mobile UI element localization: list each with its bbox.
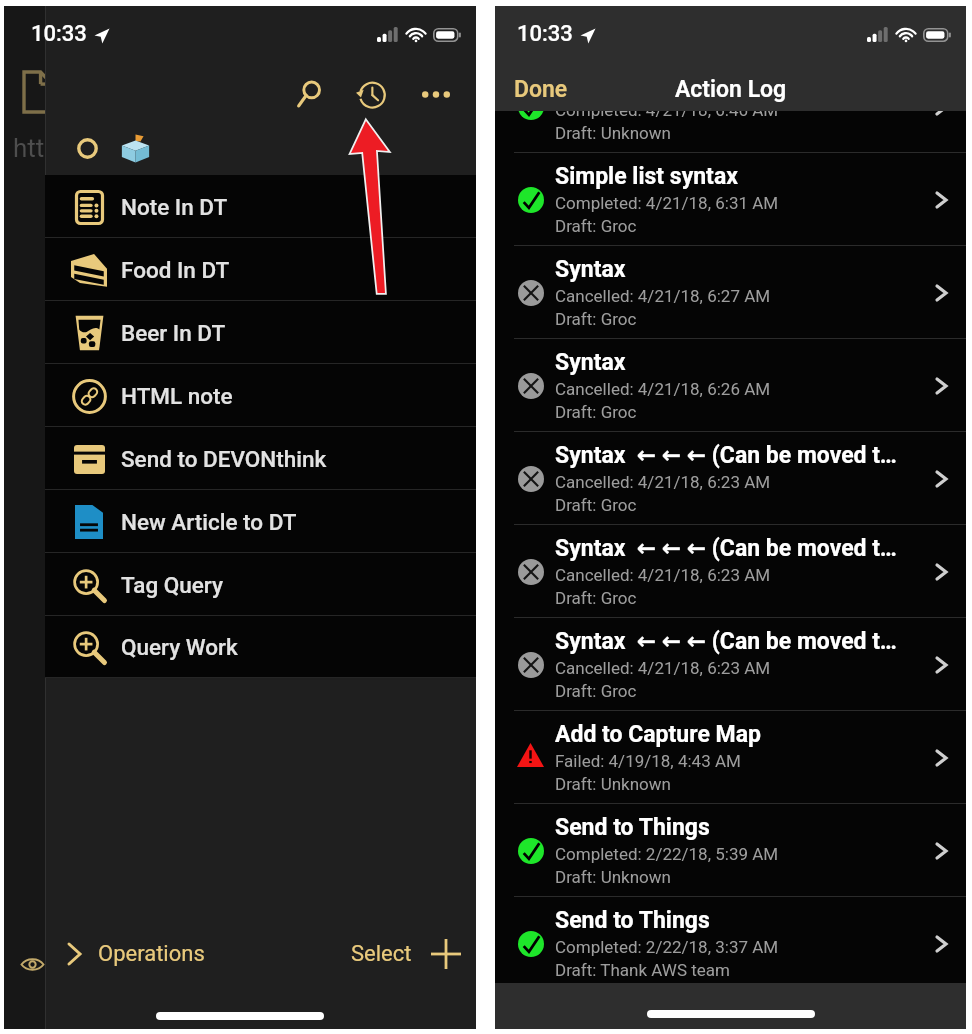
staticText: Send to Things [555,814,710,841]
button[interactable]: Add to Capture Map [495,711,966,804]
staticText: Cancelled: 4/21/18, 6:23 AM [555,565,771,585]
staticText: Draft: Groc [555,309,637,329]
staticText: Syntax ← ← ← (Can be moved to... [555,628,899,655]
staticText: Draft: Thank AWS team [555,960,730,980]
staticText: Note In DT [121,194,228,220]
staticText: Action Log [675,76,787,103]
button[interactable]: Syntax ← ← ← (Can be moved to... [495,525,966,618]
button[interactable]: Action [115,128,155,168]
button[interactable]: Note In DT [45,175,476,238]
staticText: 10:33 [517,21,573,47]
staticText: Syntax ← ← ← (Can be moved to... [555,442,899,469]
button[interactable]: Send to Things [495,804,966,897]
staticText: Food In DT [121,257,230,283]
button[interactable]: Tag Query [45,553,476,616]
button[interactable]: Syntax ← ← ← (Can be moved to... [495,432,966,525]
staticText: Syntax [555,349,626,376]
button[interactable]: History [346,70,394,118]
staticText: Cancelled: 4/21/18, 6:26 AM [555,379,771,399]
staticText: htt [13,133,45,163]
button[interactable]: Beer In DT [45,301,476,364]
staticText: HTML note [121,383,233,409]
button[interactable]: Syntax [495,246,966,339]
staticText: Operations [98,941,205,967]
staticText: Select [351,941,412,967]
staticText: Completed: 4/21/18, 6:31 AM [555,193,779,213]
button[interactable]: Syntax ← ← ← (Can be moved to... [495,618,966,711]
staticText: Send to DEVONthink [121,446,327,472]
staticText: Draft: Unknown [555,774,671,794]
staticText: Simple list syntax [555,163,738,190]
staticText: Draft: Groc [555,681,637,701]
button[interactable]: Record [67,128,107,168]
staticText: Failed: 4/19/18, 4:43 AM [555,751,741,771]
button[interactable]: Send to Things [495,897,966,983]
staticText: Tag Query [121,572,223,598]
staticText: Draft: Groc [555,588,637,608]
staticText: Add to Capture Map [555,721,761,748]
staticText: Syntax ← ← ← (Can be moved to... [555,535,899,562]
staticText: Cancelled: 4/21/18, 6:23 AM [555,658,771,678]
staticText: Draft: Groc [555,402,637,422]
staticText: Beer In DT [121,320,226,346]
staticText: Query Work [121,634,238,660]
staticText: Draft: Groc [555,216,637,236]
button[interactable]: Operations [59,926,213,982]
staticText: Draft: Unknown [555,123,671,143]
staticText: Completed: 2/22/18, 5:39 AM [555,844,779,864]
staticText: Syntax [555,256,626,283]
staticText: Send to Things [555,907,710,934]
button[interactable]: Select [343,931,420,977]
staticText: Draft: Unknown [555,867,671,887]
button[interactable]: Search [285,70,333,118]
button[interactable]: Query Work [45,616,476,678]
button[interactable]: Done [508,68,574,111]
button[interactable]: New Article to DT [45,490,476,553]
staticText: Draft: Groc [555,495,637,515]
staticText: New Article to DT [121,509,297,535]
staticText: Completed: 2/22/18, 3:37 AM [555,937,779,957]
button[interactable]: Simple list syntax [495,153,966,246]
staticText: Done [514,76,568,103]
staticText: Cancelled: 4/21/18, 6:23 AM [555,472,771,492]
staticText: 10:33 [31,21,87,47]
button[interactable]: More options [412,70,460,118]
staticText: Completed: 4/21/18, 6:46 AM [555,111,779,120]
button[interactable]: Add [424,932,468,976]
button[interactable]: Send to DEVONthink [45,427,476,490]
staticText: Cancelled: 4/21/18, 6:27 AM [555,286,771,306]
button[interactable]: Simple list syntax [495,111,966,153]
button[interactable]: Syntax [495,339,966,432]
button[interactable]: Food In DT [45,238,476,301]
button[interactable]: HTML note [45,364,476,427]
